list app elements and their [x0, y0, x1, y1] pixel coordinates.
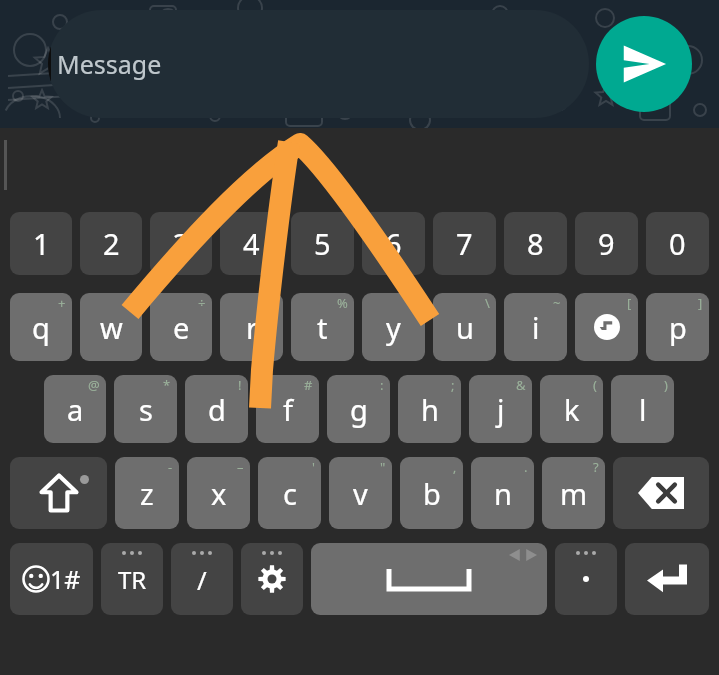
staticText: )	[664, 376, 668, 394]
staticText: s	[139, 390, 153, 429]
button[interactable]: x	[187, 457, 250, 529]
staticText: 3	[173, 224, 190, 263]
staticText: .	[524, 458, 528, 476]
button[interactable]: p	[646, 293, 709, 361]
button[interactable]: Key	[575, 293, 638, 361]
staticText: b	[423, 474, 441, 513]
button[interactable]: 7	[433, 212, 496, 275]
staticText: x	[211, 474, 227, 513]
staticText: y	[386, 308, 401, 347]
button[interactable]: Send	[596, 16, 692, 112]
staticText: Message	[57, 47, 162, 81]
staticText: t	[317, 308, 328, 347]
staticText: ~	[553, 294, 561, 312]
button[interactable]: a	[44, 375, 106, 443]
staticText: p	[669, 308, 687, 347]
staticText: @	[88, 376, 100, 394]
button[interactable]: w	[80, 293, 142, 361]
staticText: i	[532, 308, 540, 347]
staticText: j	[497, 390, 505, 429]
button[interactable]: q	[10, 293, 72, 361]
button[interactable]: Emoji and symbols	[10, 543, 93, 615]
staticText: –	[237, 458, 244, 476]
button[interactable]: u	[433, 293, 496, 361]
staticText: w	[100, 308, 123, 347]
staticText: ;	[451, 376, 455, 394]
button[interactable]: s	[114, 375, 177, 443]
staticText: a	[67, 390, 84, 429]
button[interactable]: Enter	[625, 543, 709, 615]
staticText: 0	[669, 224, 686, 263]
staticText: /	[197, 562, 207, 597]
staticText: n	[494, 474, 512, 513]
button[interactable]: Period	[555, 543, 617, 615]
button[interactable]: v	[329, 457, 392, 529]
button[interactable]: Shift	[10, 457, 107, 529]
button[interactable]: m	[542, 457, 605, 529]
staticText: 2	[103, 224, 120, 263]
staticText: 9	[598, 224, 615, 263]
button[interactable]: i	[504, 293, 567, 361]
staticText: 7	[456, 224, 473, 263]
staticText: :	[380, 376, 384, 394]
button[interactable]: r	[220, 293, 283, 361]
button[interactable]: 5	[291, 212, 354, 275]
staticText: ]	[698, 294, 703, 312]
staticText: \	[485, 294, 490, 312]
button[interactable]: 6	[362, 212, 425, 275]
staticText: q	[32, 308, 50, 347]
staticText: 1#	[50, 562, 81, 596]
button[interactable]: Message	[48, 10, 589, 118]
staticText: 5	[314, 224, 331, 263]
button[interactable]: l	[611, 375, 674, 443]
staticText: [	[627, 294, 632, 312]
staticText: m	[560, 474, 588, 513]
staticText: r	[246, 308, 258, 347]
button[interactable]: c	[258, 457, 321, 529]
staticText: k	[564, 390, 580, 429]
staticText: 1	[33, 224, 50, 263]
staticText: e	[173, 308, 190, 347]
staticText: g	[350, 390, 368, 429]
button[interactable]: 3	[150, 212, 212, 275]
button[interactable]: t	[291, 293, 354, 361]
staticText: (	[593, 376, 597, 394]
button[interactable]: 1	[10, 212, 72, 275]
button[interactable]: 2	[80, 212, 142, 275]
staticText: c	[283, 474, 297, 513]
button[interactable]: z	[115, 457, 179, 529]
staticText: h	[421, 390, 439, 429]
staticText: z	[140, 474, 154, 513]
staticText: ‚	[453, 458, 457, 476]
button[interactable]: Slash	[171, 543, 233, 615]
button[interactable]: 0	[646, 212, 709, 275]
staticText: 8	[527, 224, 544, 263]
staticText: TR	[118, 563, 147, 596]
button[interactable]: y	[362, 293, 425, 361]
staticText: 6	[385, 224, 402, 263]
button[interactable]: g	[327, 375, 390, 443]
button[interactable]: 8	[504, 212, 567, 275]
staticText: #	[304, 376, 313, 394]
button[interactable]: Language	[101, 543, 163, 615]
button[interactable]: b	[400, 457, 463, 529]
staticText: "	[380, 458, 386, 476]
staticText: ÷	[198, 294, 206, 312]
staticText: %	[337, 294, 348, 312]
staticText: u	[456, 308, 474, 347]
button[interactable]: k	[540, 375, 603, 443]
button[interactable]: Backspace	[613, 457, 709, 529]
button[interactable]: 9	[575, 212, 638, 275]
staticText: f	[283, 390, 293, 429]
button[interactable]: e	[150, 293, 212, 361]
button[interactable]: 4	[220, 212, 283, 275]
staticText: l	[639, 390, 647, 429]
button[interactable]: Space	[311, 543, 547, 615]
button[interactable]: n	[471, 457, 534, 529]
button[interactable]: h	[398, 375, 461, 443]
button[interactable]: f	[256, 375, 319, 443]
button[interactable]: j	[469, 375, 532, 443]
staticText: v	[353, 474, 368, 513]
button[interactable]: Settings	[241, 543, 303, 615]
button[interactable]: d	[185, 375, 248, 443]
